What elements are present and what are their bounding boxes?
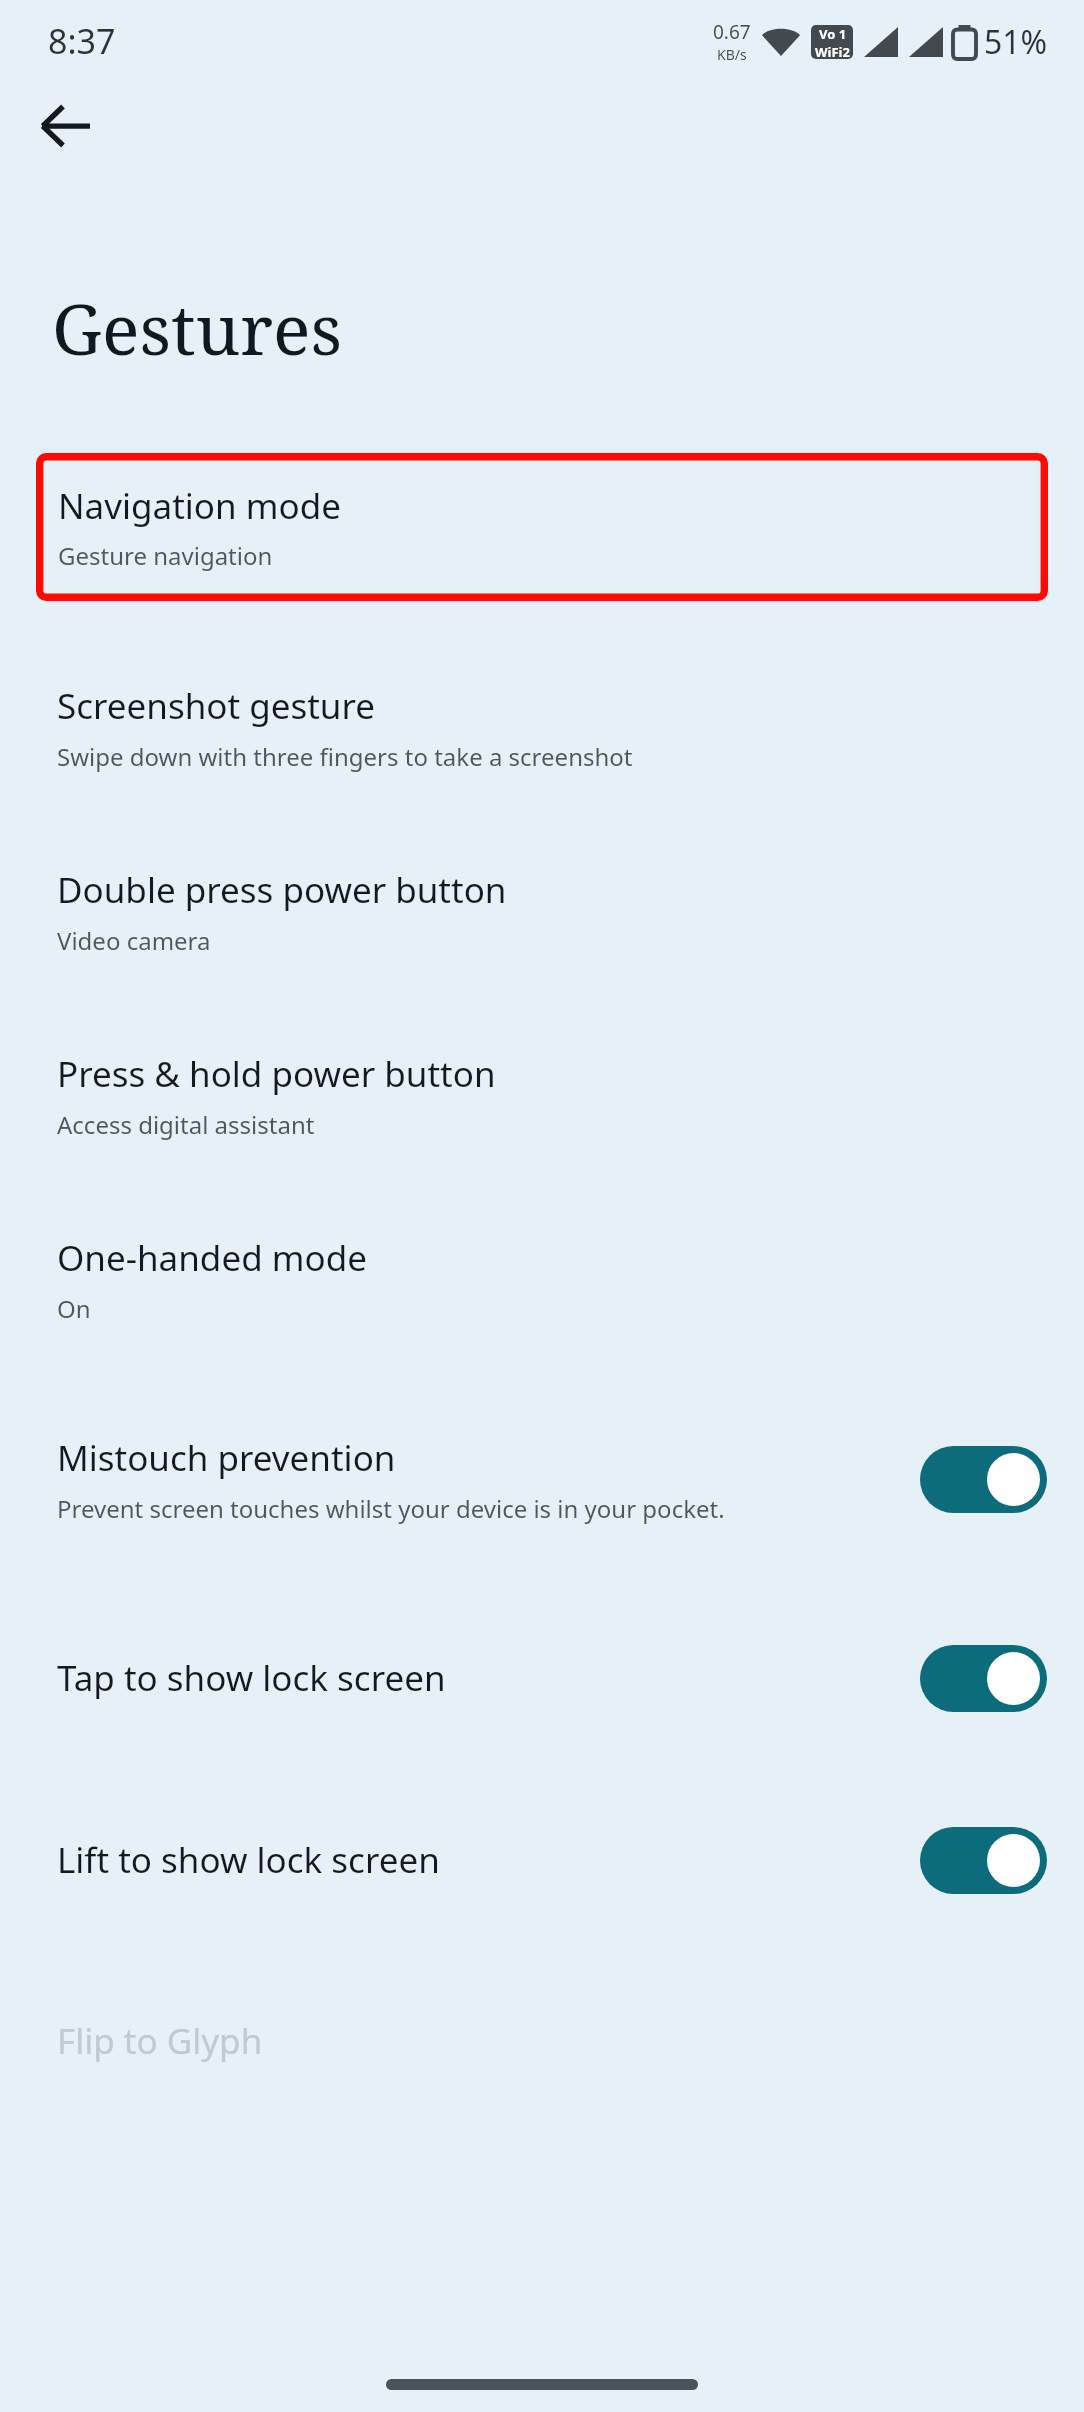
button[interactable]: Mistouch prevention: [0, 1371, 1084, 1587]
staticText: WiFi2: [815, 43, 850, 59]
staticText: Video camera: [57, 924, 211, 957]
staticText: Prevent screen touches whilst your devic…: [57, 1492, 725, 1525]
button[interactable]: Tap to show lock screen: [0, 1587, 1084, 1769]
button[interactable]: One-handed mode: [0, 1187, 1084, 1371]
button[interactable]: Double press power button: [0, 819, 1084, 1003]
button[interactable]: Press & hold power button: [0, 1003, 1084, 1187]
staticText: Screenshot gesture: [57, 682, 375, 730]
staticText: KB/s: [717, 45, 747, 64]
button[interactable]: Navigation mode: [36, 453, 1048, 601]
button[interactable]: Lift to show lock screen: [0, 1769, 1084, 1951]
staticText: Tap to show lock screen: [57, 1654, 446, 1702]
staticText: Swipe down with three fingers to take a …: [57, 740, 633, 773]
staticText: Access digital assistant: [57, 1108, 315, 1141]
button[interactable]: Lift to show lock screen switch: [920, 1827, 1047, 1894]
staticText: One-handed mode: [57, 1234, 367, 1282]
staticText: 51%: [984, 20, 1048, 64]
staticText: 0.67: [713, 19, 751, 45]
button[interactable]: Screenshot gesture: [0, 635, 1084, 819]
staticText: Flip to Glyph: [57, 2017, 263, 2065]
staticText: Vo 1: [819, 25, 847, 43]
button[interactable]: Mistouch prevention switch: [920, 1446, 1047, 1513]
staticText: Lift to show lock screen: [57, 1836, 440, 1884]
staticText: 8:37: [48, 18, 116, 64]
staticText: Press & hold power button: [57, 1050, 496, 1098]
staticText: Mistouch prevention: [57, 1434, 396, 1482]
button[interactable]: Tap to show lock screen switch: [920, 1645, 1047, 1712]
staticText: Navigation mode: [58, 482, 341, 530]
staticText: Gesture navigation: [58, 539, 273, 572]
staticText: On: [57, 1292, 91, 1325]
button[interactable]: Flip to Glyph: [0, 1951, 1084, 2131]
staticText: Double press power button: [57, 866, 507, 914]
button[interactable]: Back: [20, 82, 110, 170]
staticText: Gestures: [52, 280, 343, 375]
